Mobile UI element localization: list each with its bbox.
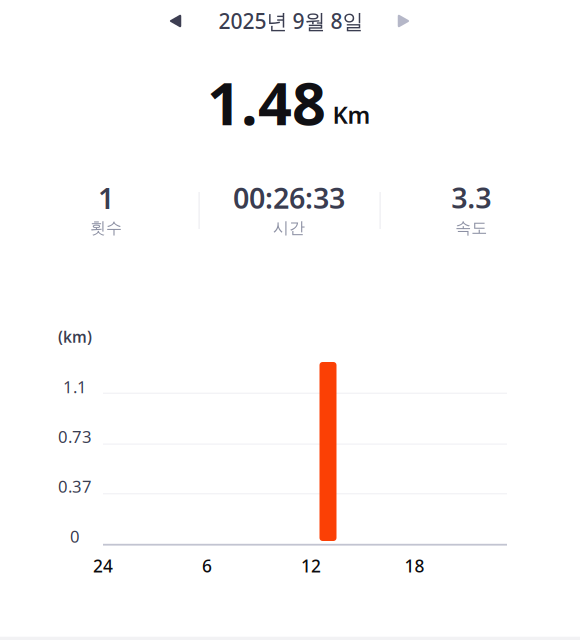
staticText: 18 bbox=[405, 554, 425, 578]
staticText: (km) bbox=[58, 326, 92, 347]
staticText: 0.37 bbox=[58, 475, 92, 498]
staticText: 12 bbox=[301, 554, 321, 578]
staticText: 24 bbox=[93, 554, 113, 578]
staticText: 1.48 bbox=[207, 62, 326, 143]
staticText: 1.1 bbox=[63, 375, 87, 398]
staticText: 시간 bbox=[273, 218, 305, 238]
staticText: 0 bbox=[70, 525, 80, 548]
staticText: 0.73 bbox=[58, 425, 92, 448]
staticText: 6 bbox=[202, 554, 212, 578]
staticText: 2025년 9월 8일 bbox=[218, 6, 363, 35]
staticText: 속도 bbox=[455, 218, 487, 238]
staticText: Km bbox=[332, 98, 370, 131]
staticText: 3.3 bbox=[451, 178, 491, 217]
staticText: 횟수 bbox=[90, 218, 122, 238]
staticText: 00:26:33 bbox=[233, 178, 345, 217]
staticText: 1 bbox=[98, 178, 114, 217]
